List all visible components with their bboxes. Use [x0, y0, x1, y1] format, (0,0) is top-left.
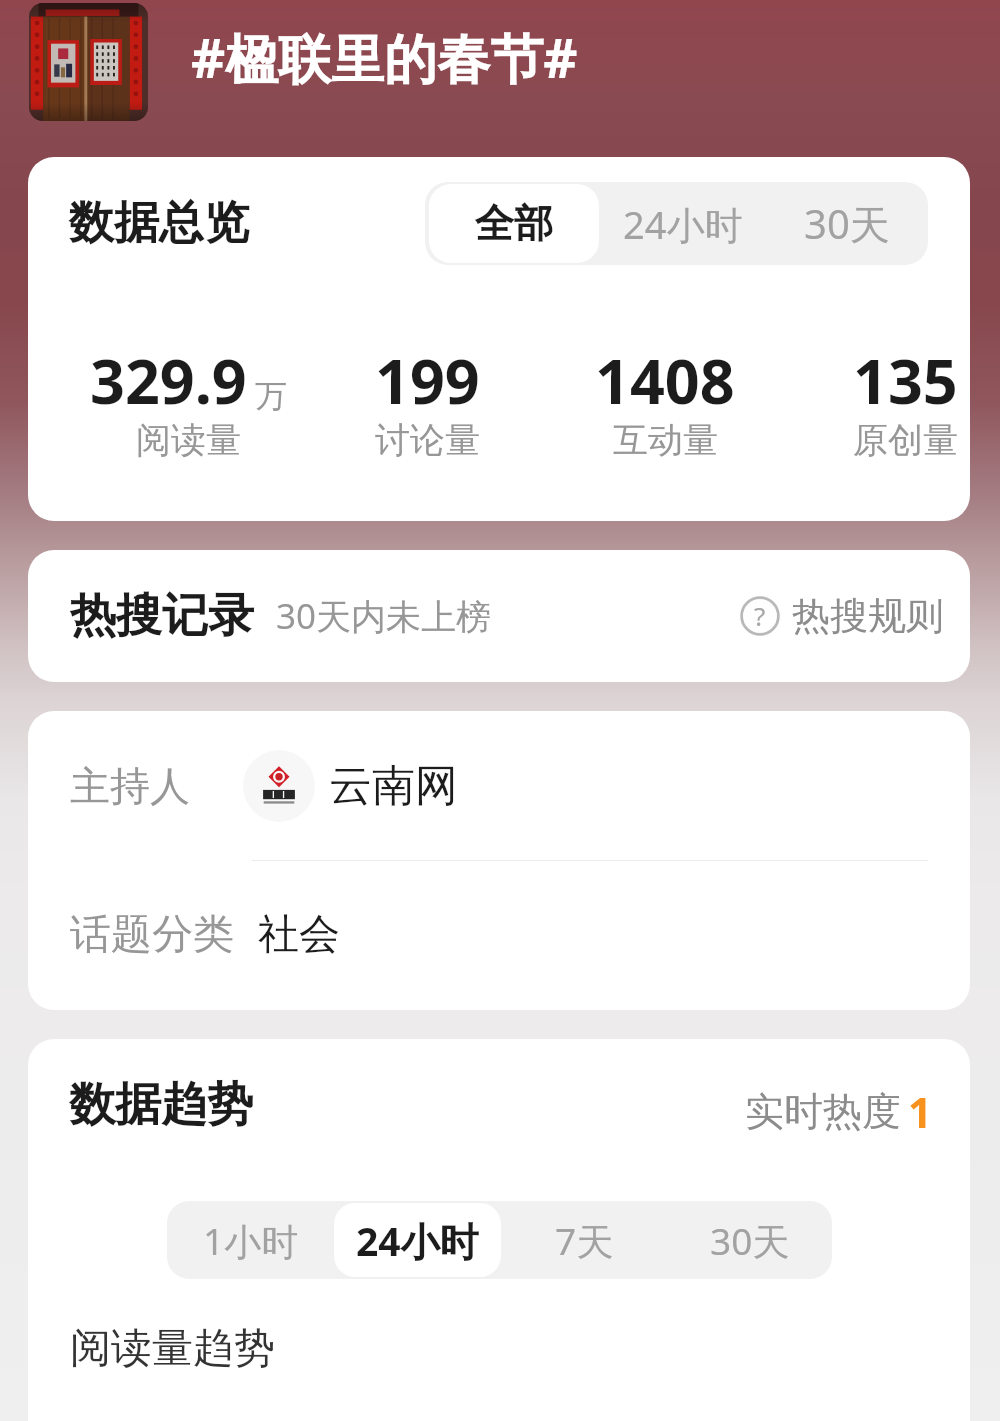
staticText: 阅读量趋势 — [70, 1323, 275, 1375]
staticText: 30天 — [710, 1215, 790, 1266]
staticText: 互动量 — [613, 418, 718, 462]
staticText: 原创量 — [853, 418, 958, 462]
staticText: 全部 — [475, 199, 553, 248]
button[interactable]: 帮助 — [740, 550, 970, 682]
staticText: 实时热度 — [745, 1087, 901, 1136]
button[interactable]: 话题分类 — [70, 860, 970, 1010]
staticText: 329.9 — [90, 339, 247, 422]
button[interactable]: 24小时 — [599, 182, 766, 265]
button[interactable]: 199 — [277, 339, 577, 466]
staticText: 30天内未上榜 — [276, 592, 492, 640]
staticText: 30天 — [804, 196, 890, 251]
staticText: 数据趋势 — [69, 1076, 253, 1134]
staticText: 话题分类 — [70, 909, 234, 961]
button[interactable]: 1408 — [515, 339, 815, 466]
button[interactable]: 24小时 — [334, 1203, 501, 1277]
staticText: 热搜规则 — [792, 592, 944, 640]
staticText: 24小时 — [356, 1214, 479, 1267]
staticText: 数据总览 — [69, 195, 249, 252]
other: 帮助 — [740, 596, 780, 636]
button[interactable]: 329.9 — [38, 339, 338, 466]
staticText: 热搜记录 — [70, 587, 254, 645]
button[interactable]: 30天 — [667, 1201, 832, 1279]
staticText: 24小时 — [623, 198, 743, 250]
staticText: 1小时 — [203, 1215, 299, 1266]
staticText: 199 — [375, 339, 480, 422]
button[interactable]: 话题封面图片 — [29, 3, 148, 121]
staticText: 讨论量 — [375, 418, 480, 462]
staticText: 云南网 — [329, 759, 458, 813]
button[interactable]: 135 — [755, 339, 970, 466]
button[interactable]: 主持人 — [70, 711, 970, 860]
staticText: 社会 — [258, 909, 340, 961]
staticText: 7天 — [555, 1215, 614, 1266]
button[interactable]: 30天 — [766, 182, 928, 265]
staticText: 135 — [853, 339, 958, 422]
button[interactable]: 7天 — [501, 1201, 667, 1279]
staticText: 阅读量 — [136, 418, 241, 462]
staticText: ? — [754, 598, 766, 633]
staticText: 主持人 — [70, 761, 190, 811]
button[interactable]: 实时热度 — [745, 1083, 933, 1140]
button[interactable]: #楹联里的春节# — [191, 21, 578, 93]
staticText: 1 — [908, 1083, 933, 1140]
staticText: 1408 — [595, 339, 735, 422]
button[interactable]: 1小时 — [167, 1201, 334, 1279]
staticText: 万 — [255, 376, 287, 416]
button[interactable]: 全部 — [429, 184, 599, 263]
